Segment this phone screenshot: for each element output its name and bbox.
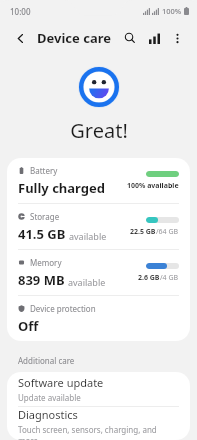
staticText: Battery bbox=[30, 165, 58, 176]
staticText: Great! bbox=[70, 117, 128, 144]
staticText: Storage bbox=[30, 211, 60, 222]
button[interactable]: Battery bbox=[7, 158, 190, 203]
button[interactable]: Memory bbox=[7, 250, 190, 295]
staticText: 22.5 GB bbox=[130, 227, 156, 237]
staticText: Off bbox=[18, 317, 39, 335]
staticText: /64 GB bbox=[156, 227, 179, 237]
button[interactable]: Diagnostics bbox=[7, 407, 190, 440]
button[interactable]: Search bbox=[118, 26, 142, 50]
staticText: /4 GB bbox=[160, 273, 179, 283]
staticText: 100% bbox=[162, 6, 182, 16]
staticText: 100% available bbox=[127, 181, 179, 191]
staticText: 2.6 GB bbox=[138, 273, 160, 283]
staticText: Software update bbox=[18, 375, 104, 390]
staticText: Device protection bbox=[30, 303, 96, 314]
button[interactable]: Back bbox=[9, 27, 31, 49]
button[interactable]: Software update bbox=[7, 372, 190, 406]
staticText: 839 MB bbox=[18, 271, 65, 289]
staticText: Additional care bbox=[18, 355, 75, 366]
staticText: Fully charged bbox=[18, 179, 105, 197]
staticText: available bbox=[68, 276, 106, 288]
staticText: 10:00 bbox=[10, 6, 31, 17]
staticText: available bbox=[69, 230, 107, 242]
button[interactable]: Usage statistics bbox=[142, 26, 166, 50]
staticText: Update available bbox=[18, 392, 81, 403]
button[interactable]: More options bbox=[166, 27, 188, 49]
staticText: 41.5 GB bbox=[18, 225, 66, 243]
staticText: Diagnostics bbox=[18, 407, 78, 422]
staticText: Device care bbox=[37, 29, 111, 47]
staticText: Touch screen, sensors, charging, and mor… bbox=[18, 424, 179, 440]
staticText: Memory bbox=[30, 257, 62, 268]
button[interactable]: Storage bbox=[7, 204, 190, 249]
button[interactable]: Device protection bbox=[7, 296, 190, 341]
